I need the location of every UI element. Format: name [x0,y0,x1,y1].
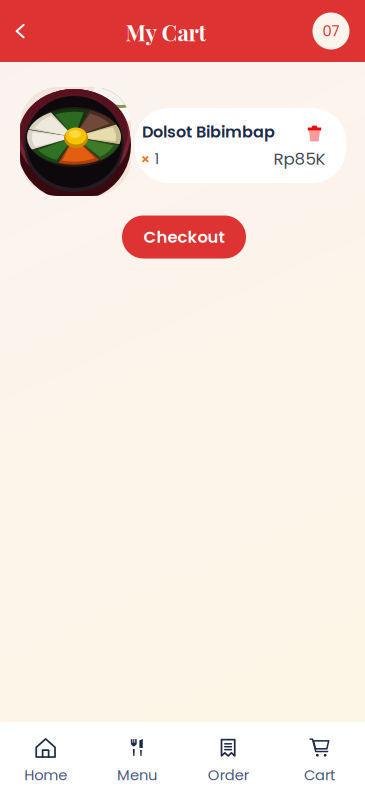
staticText: 07 [322,21,339,41]
button[interactable]: Home [0,719,91,798]
button[interactable]: Cart [274,719,365,798]
staticText: My Cart [125,17,206,47]
button[interactable]: Menu [91,719,182,798]
button[interactable]: Checkout [122,215,246,258]
button[interactable]: Back [2,11,38,51]
button[interactable]: Dolsot Bibimbap [135,108,346,183]
button[interactable]: 7 items in cart [312,12,349,49]
button[interactable]: Remove Dolsot Bibimbap [298,117,330,149]
button[interactable]: Order [182,719,274,798]
staticText: Home [24,765,67,785]
staticText: 1 [154,149,159,169]
staticText: Menu [117,765,157,785]
staticText: Cart [304,765,335,785]
staticText: Rp85K [273,147,325,171]
staticText: Order [208,765,249,785]
staticText: Checkout [143,225,224,248]
staticText: × [140,149,150,169]
staticText: Dolsot Bibimbap [142,121,275,143]
